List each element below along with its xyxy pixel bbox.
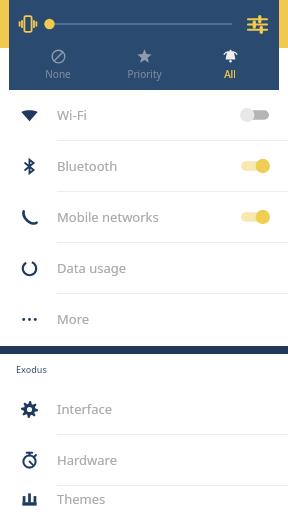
staticText: None [45, 67, 71, 81]
button[interactable]: All [187, 47, 273, 90]
staticText: Mobile networks [57, 208, 238, 226]
staticText: Themes [57, 490, 288, 508]
button[interactable]: None [15, 47, 101, 90]
button[interactable]: Toggle on [238, 206, 272, 228]
button[interactable]: Wi-Fi [0, 90, 288, 140]
staticText: Priority [127, 67, 162, 81]
button[interactable]: Bluetooth [0, 141, 288, 191]
button[interactable]: Ringer mode vibrate [14, 10, 42, 38]
button[interactable]: Hardware [0, 435, 288, 485]
staticText: Interface [57, 400, 288, 418]
staticText: Hardware [57, 451, 288, 469]
staticText: All [224, 67, 236, 81]
button[interactable]: Toggle on [238, 155, 272, 177]
staticText: Wi-Fi [57, 106, 238, 124]
button[interactable]: Volume slider [44, 10, 232, 38]
button[interactable]: Toggle off [238, 104, 272, 126]
button[interactable]: More [0, 294, 288, 344]
button[interactable]: Interface [0, 384, 288, 434]
staticText: Bluetooth [57, 157, 238, 175]
button[interactable]: Priority [101, 47, 187, 90]
staticText: Data usage [57, 259, 288, 277]
button[interactable]: Themes [0, 486, 288, 512]
staticText: More [57, 310, 288, 328]
staticText: Exodus [16, 363, 47, 375]
button[interactable]: Mobile networks [0, 192, 288, 242]
button[interactable]: Sound settings [242, 9, 272, 39]
button[interactable]: Data usage [0, 243, 288, 293]
